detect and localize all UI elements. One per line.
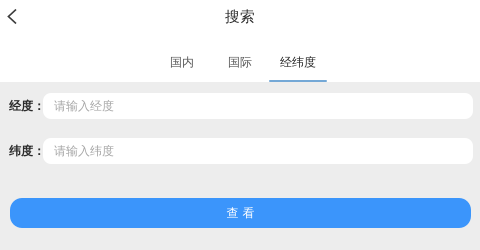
button[interactable]: 查 看	[10, 198, 471, 228]
button[interactable]: 经纬度	[269, 33, 327, 82]
staticText: 经纬度	[280, 55, 316, 70]
staticText: 搜索	[225, 7, 255, 25]
staticText: 纬度：	[9, 144, 45, 158]
staticText: 请输入经度	[54, 99, 114, 113]
button[interactable]: 国内	[153, 33, 211, 82]
staticText: 查 看	[226, 206, 254, 220]
staticText: 国内	[170, 55, 194, 70]
staticText: 国际	[228, 55, 252, 70]
button[interactable]: 请输入纬度	[43, 138, 473, 164]
button[interactable]: 国际	[211, 33, 269, 82]
staticText: 请输入纬度	[54, 144, 114, 158]
button[interactable]: Back	[0, 0, 24, 32]
button[interactable]: 请输入经度	[43, 93, 473, 119]
staticText: 经度：	[9, 99, 45, 113]
